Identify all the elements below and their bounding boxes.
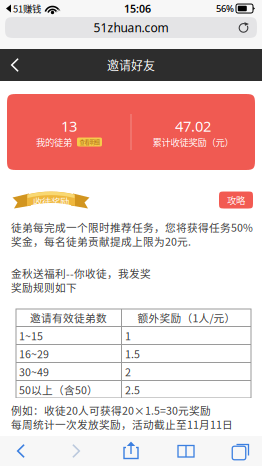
staticText: 47.02 — [175, 116, 211, 136]
button[interactable]: Back — [0, 436, 42, 466]
staticText: 2.5 — [125, 382, 140, 397]
staticText: 1~15 — [19, 328, 43, 343]
button[interactable]: 51赚钱 — [3, 0, 46, 17]
staticText: 56% — [216, 2, 234, 15]
staticText: 徒弟每完成一个限时推荐任务，您将获得任务50% — [11, 219, 253, 235]
button[interactable]: Bookmarks — [165, 436, 207, 466]
staticText: 邀请有效徒弟数 — [30, 310, 107, 325]
button[interactable]: Share — [110, 436, 152, 466]
staticText: 查看明细 — [79, 138, 99, 146]
staticText: 金秋送福利--你收徒，我发奖 — [11, 265, 151, 281]
staticText: 奖励规则如下 — [11, 279, 77, 295]
staticText: 30~49 — [19, 364, 49, 379]
staticText: 13 — [61, 116, 77, 136]
staticText: 51赚钱 — [13, 2, 41, 15]
staticText: 例如：收徒20人可获得20×1.5=30元奖励 — [11, 402, 211, 418]
staticText: 邀请好友 — [107, 56, 155, 74]
button[interactable]: Back — [0, 49, 30, 81]
staticText: 15:06 — [124, 1, 151, 16]
button[interactable]: 51zhuan.com — [5, 17, 257, 38]
button[interactable]: 攻略 — [219, 191, 253, 208]
staticText: 额外奖励（1人/元） — [137, 310, 235, 325]
staticText: 1.5 — [125, 346, 140, 361]
button[interactable]: Forward — [55, 436, 97, 466]
staticText: 奖金，每名徒弟贡献提成上限为20元. — [11, 233, 191, 249]
button[interactable]: 查看明细 — [77, 137, 102, 146]
staticText: 我的徒弟 — [36, 135, 72, 149]
staticText: 16~29 — [19, 346, 49, 361]
staticText: 51zhuan.com — [93, 19, 168, 35]
staticText: 1 — [125, 328, 131, 343]
staticText: 累计收徒奖励（元） — [152, 135, 233, 149]
staticText: 攻略 — [227, 193, 245, 207]
staticText: 每周统计一次发放奖励，活动截止至11月11日 — [11, 416, 233, 432]
button[interactable]: Tabs — [220, 436, 262, 466]
staticText: 收徒奖励 — [33, 195, 69, 208]
staticText: 2 — [125, 364, 131, 379]
staticText: 50以上（含50） — [19, 382, 98, 397]
